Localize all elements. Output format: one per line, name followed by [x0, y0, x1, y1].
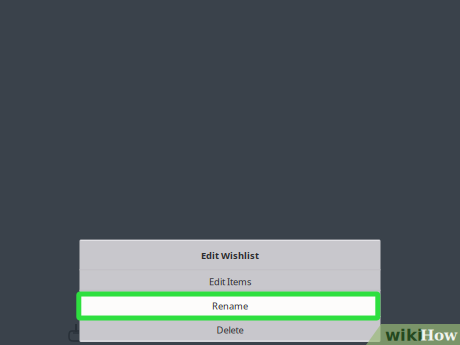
staticText: How	[420, 326, 457, 344]
staticText: Rename	[212, 300, 248, 312]
button[interactable]: Edit Items	[79, 271, 380, 292]
staticText: Edit Items	[209, 275, 251, 288]
button[interactable]: Edit Wishlist	[79, 240, 380, 270]
button[interactable]: Rename	[79, 293, 380, 319]
button[interactable]: Delete	[79, 317, 380, 343]
staticText: Delete	[216, 324, 243, 336]
staticText: wiki	[385, 325, 423, 345]
staticText: Edit Wishlist	[201, 249, 259, 262]
